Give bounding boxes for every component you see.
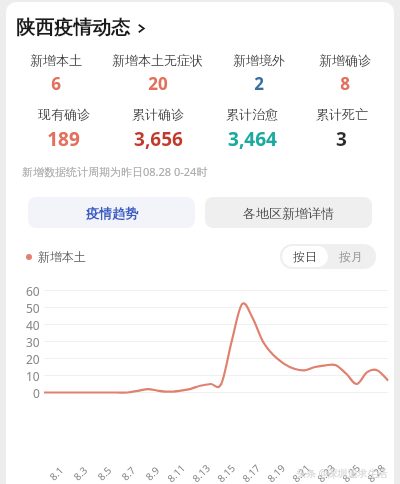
staticText: 8.23 <box>314 461 338 484</box>
staticText: 60 <box>26 283 40 299</box>
staticText: 189 <box>47 126 80 152</box>
button[interactable]: 按月 <box>328 246 374 267</box>
staticText: 各地区新增详情 <box>243 205 334 221</box>
staticText: 8.13 <box>189 461 213 484</box>
staticText: 8.17 <box>239 461 263 484</box>
button[interactable]: 疫情趋势 <box>28 197 195 228</box>
staticText: 2 <box>254 72 264 95</box>
button[interactable]: 各地区新增详情 <box>205 197 372 228</box>
staticText: 头条 @深圳追求生活 <box>296 466 388 480</box>
staticText: 8.11 <box>164 461 188 484</box>
staticText: 陕西疫情动态 <box>16 16 130 40</box>
staticText: 8 <box>340 72 350 95</box>
staticText: 3,656 <box>134 126 183 152</box>
staticText: 8.1 <box>46 463 67 483</box>
staticText: 20 <box>148 72 168 95</box>
staticText: 累计确诊 <box>132 106 184 122</box>
staticText: 按月 <box>339 249 363 264</box>
button[interactable]: 陕西疫情动态 <box>6 14 394 42</box>
button[interactable]: 按日 <box>282 246 328 267</box>
staticText: 8.3 <box>70 463 91 483</box>
staticText: 6 <box>51 72 61 95</box>
staticText: 8.25 <box>339 461 363 484</box>
staticText: 0 <box>33 385 40 401</box>
staticText: 8.28 <box>364 461 388 484</box>
staticText: 10 <box>26 368 40 384</box>
staticText: 8.21 <box>289 461 313 484</box>
staticText: 累计治愈 <box>226 106 278 122</box>
staticText: 50 <box>26 300 40 316</box>
staticText: 新增境外 <box>233 52 285 68</box>
staticText: 新增本土 <box>38 249 86 264</box>
staticText: 20 <box>26 351 40 367</box>
staticText: 30 <box>26 334 40 350</box>
staticText: 按日 <box>293 249 317 264</box>
staticText: 8.15 <box>214 461 238 484</box>
staticText: 新增本土无症状 <box>112 52 203 68</box>
staticText: 8.5 <box>94 463 115 483</box>
staticText: 8.19 <box>264 461 288 484</box>
staticText: 累计死亡 <box>316 106 368 122</box>
staticText: 疫情趋势 <box>86 205 138 221</box>
staticText: 现有确诊 <box>38 106 90 122</box>
staticText: 40 <box>26 317 40 333</box>
staticText: 3 <box>336 126 347 152</box>
staticText: 新增数据统计周期为昨日08.28 0-24时 <box>22 164 208 179</box>
staticText: 3,464 <box>228 126 277 152</box>
staticText: 新增确诊 <box>319 52 371 68</box>
staticText: 新增本土 <box>30 52 82 68</box>
staticText: 8.7 <box>118 463 139 483</box>
staticText: 8.9 <box>142 463 163 483</box>
